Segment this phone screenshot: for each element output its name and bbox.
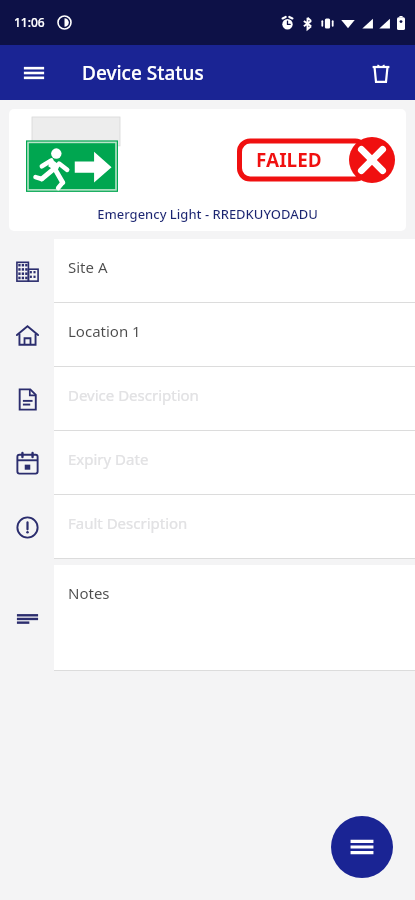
staticText: Location 1 bbox=[68, 321, 141, 341]
button[interactable]: FAILED bbox=[9, 109, 406, 231]
staticText: Device Description bbox=[68, 385, 199, 405]
staticText: Device Status bbox=[82, 60, 204, 86]
button[interactable]: Location 1 bbox=[54, 303, 415, 367]
button[interactable]: Site A bbox=[54, 239, 415, 303]
staticText: Notes bbox=[68, 583, 110, 603]
button[interactable]: Fault Description bbox=[54, 495, 415, 559]
staticText: 11:06 bbox=[14, 14, 45, 30]
button[interactable]: Notes bbox=[54, 565, 415, 671]
button[interactable]: Device Description bbox=[54, 367, 415, 431]
staticText: Emergency Light - RREDKUYODADU bbox=[9, 205, 406, 223]
button[interactable]: Menu bbox=[14, 53, 54, 93]
staticText: Site A bbox=[68, 257, 108, 277]
staticText: Fault Description bbox=[68, 513, 188, 533]
staticText: Expiry Date bbox=[68, 449, 149, 469]
button[interactable]: Delete bbox=[361, 53, 401, 93]
staticText: FAILED bbox=[256, 147, 322, 173]
button[interactable]: Menu actions bbox=[331, 816, 393, 878]
button[interactable]: Expiry Date bbox=[54, 431, 415, 495]
